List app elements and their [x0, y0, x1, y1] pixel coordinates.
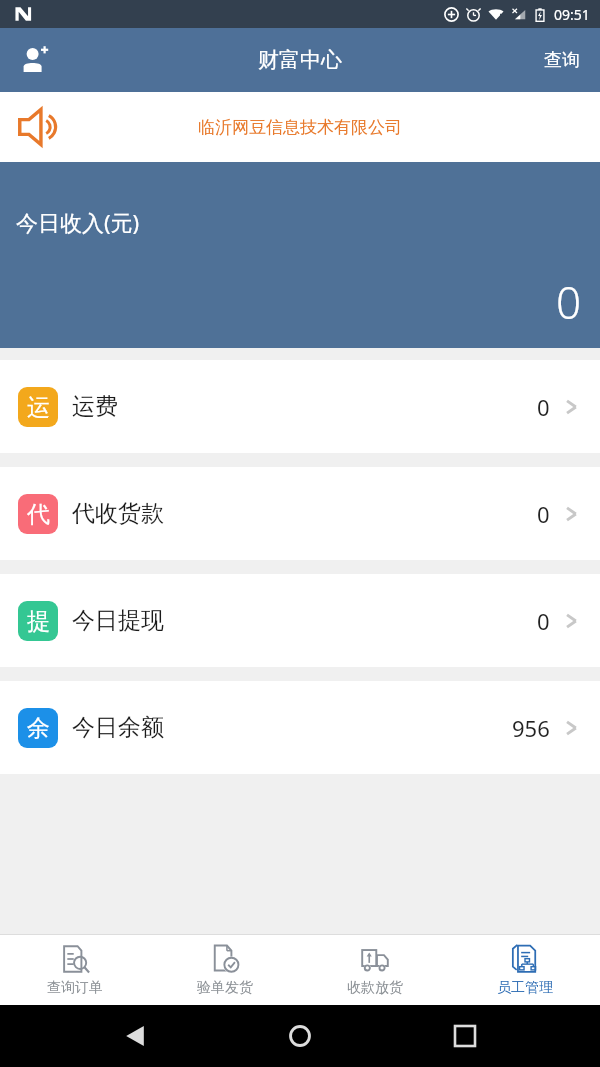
button[interactable]: 验单发货: [150, 935, 300, 1005]
button[interactable]: 收款放货: [300, 935, 450, 1005]
button[interactable]: 余: [0, 681, 600, 774]
staticText: 提: [27, 607, 50, 636]
staticText: 临沂网豆信息技术有限公司: [198, 117, 402, 138]
staticText: 今日余额: [72, 713, 164, 742]
button[interactable]: 代: [0, 467, 600, 560]
staticText: 0: [537, 606, 550, 636]
button[interactable]: Back: [105, 1006, 165, 1066]
staticText: 0: [537, 392, 550, 422]
staticText: 代收货款: [72, 499, 164, 528]
staticText: 收款放货: [347, 979, 403, 997]
staticText: 0: [556, 272, 582, 332]
button[interactable]: Recents: [435, 1006, 495, 1066]
button[interactable]: 员工管理: [450, 935, 600, 1005]
button[interactable]: 查询: [524, 28, 600, 92]
button[interactable]: Home: [270, 1006, 330, 1066]
button[interactable]: Announcement: [0, 92, 600, 162]
staticText: 查询订单: [47, 979, 103, 997]
button[interactable]: Add user: [0, 28, 70, 92]
button[interactable]: 运: [0, 360, 600, 453]
staticText: 0: [537, 499, 550, 529]
staticText: 代: [27, 500, 50, 529]
staticText: 验单发货: [197, 979, 253, 997]
staticText: 09:51: [554, 5, 590, 24]
staticText: 查询: [544, 49, 580, 72]
staticText: 运: [27, 393, 50, 422]
staticText: 956: [512, 713, 550, 743]
button[interactable]: 查询订单: [0, 935, 150, 1005]
staticText: 员工管理: [497, 979, 553, 997]
staticText: 今日提现: [72, 606, 164, 635]
staticText: 运费: [72, 392, 118, 421]
other: Announcement: [14, 101, 66, 153]
staticText: 财富中心: [258, 47, 342, 73]
staticText: 余: [27, 714, 50, 743]
button[interactable]: 提: [0, 574, 600, 667]
staticText: 今日收入(元): [16, 207, 140, 237]
